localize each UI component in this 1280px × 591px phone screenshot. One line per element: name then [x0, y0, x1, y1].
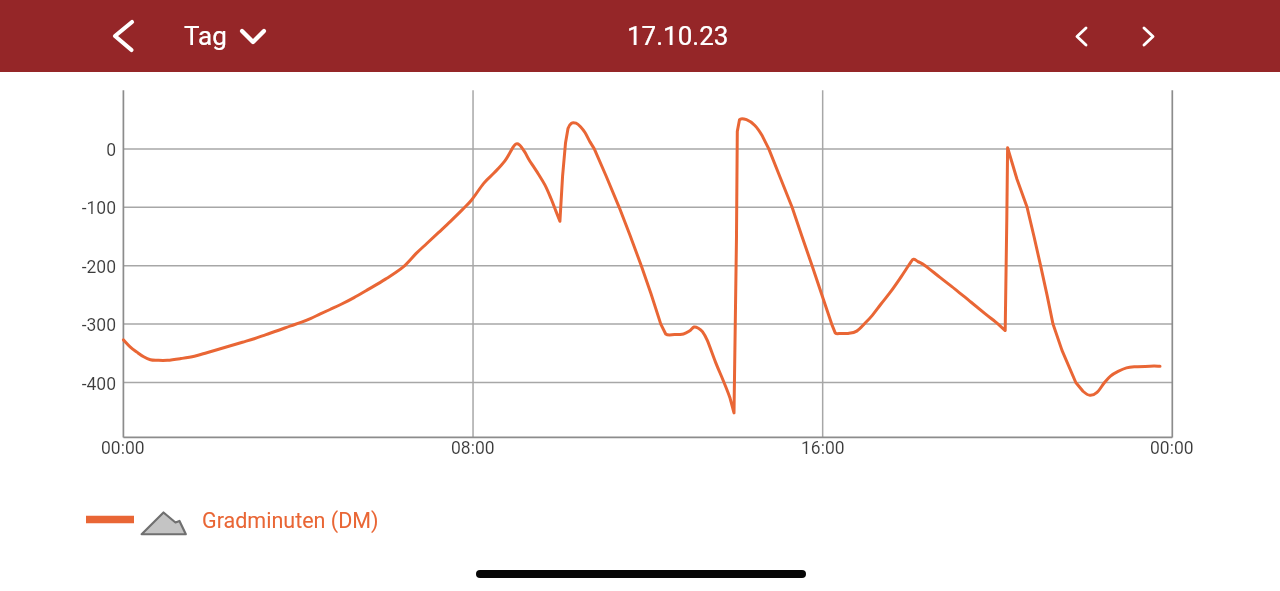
staticText: -300: [81, 315, 116, 336]
button[interactable]: Back: [95, 8, 151, 64]
staticText: Tag: [184, 21, 227, 51]
staticText: 08:00: [451, 438, 495, 459]
button[interactable]: Tag: [184, 0, 264, 72]
staticText: -400: [81, 374, 116, 395]
staticText: -200: [81, 257, 116, 278]
staticText: -100: [81, 198, 116, 219]
button[interactable]: Gradminuten (DM): [80, 502, 398, 538]
staticText: 00:00: [101, 438, 145, 459]
staticText: Gradminuten (DM): [202, 508, 379, 533]
button[interactable]: Next day: [1120, 8, 1176, 64]
staticText: 0: [106, 140, 116, 161]
staticText: 17.10.23: [627, 21, 729, 51]
staticText: 00:00: [1150, 438, 1194, 459]
staticText: 16:00: [801, 438, 845, 459]
button[interactable]: Previous day: [1053, 8, 1109, 64]
